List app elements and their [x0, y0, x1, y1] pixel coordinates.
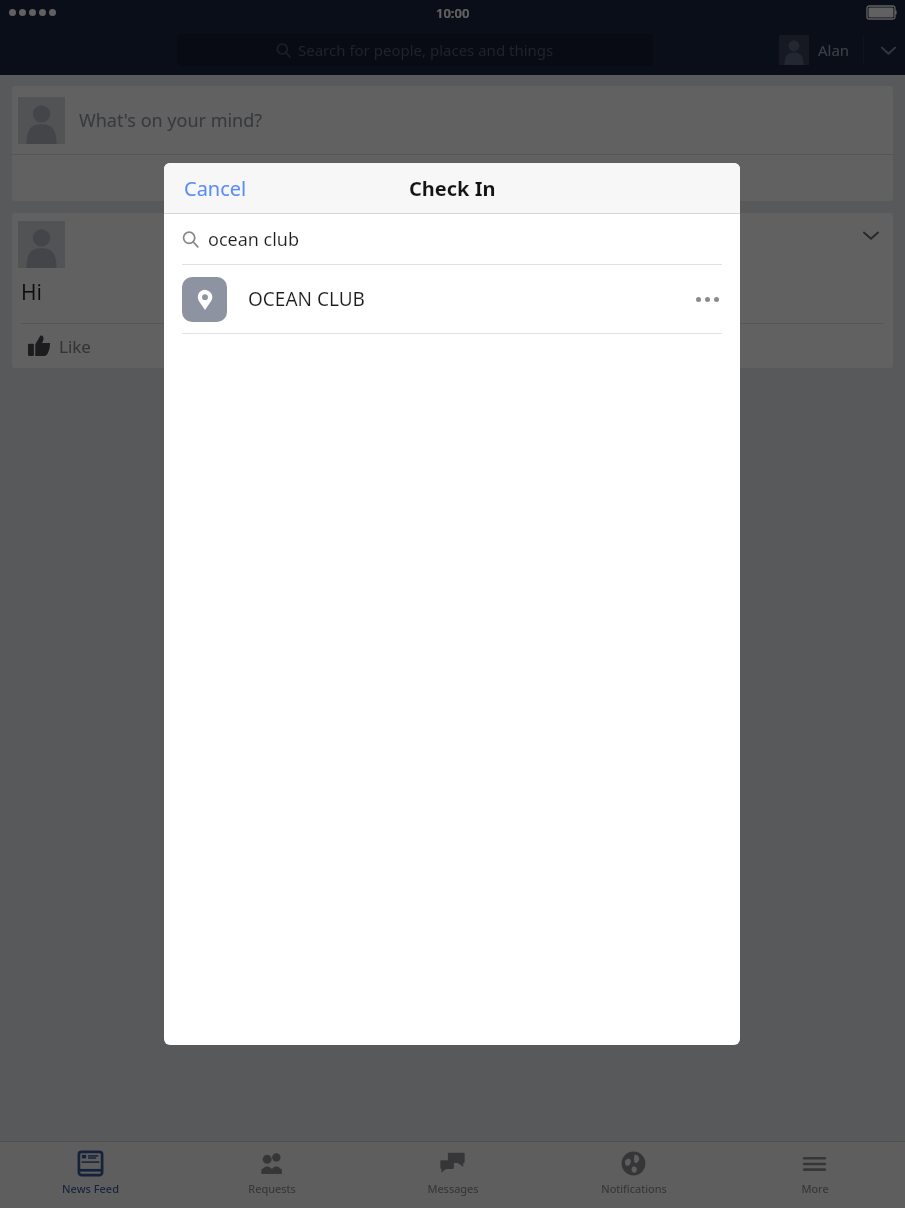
- staticText: Search for people, places and things: [298, 40, 554, 60]
- staticText: Check In: [409, 175, 496, 202]
- staticText: ocean club: [208, 227, 300, 252]
- button[interactable]: News Feed: [0, 1142, 181, 1203]
- staticText: Like: [59, 335, 91, 358]
- staticText: Notifications: [601, 1181, 667, 1196]
- staticText: Hi: [21, 278, 42, 307]
- staticText: Messages: [427, 1181, 479, 1196]
- button[interactable]: Post options: [857, 221, 885, 249]
- button[interactable]: Notifications: [543, 1142, 724, 1203]
- other: Account menu: [877, 39, 899, 61]
- staticText: Cancel: [184, 175, 247, 202]
- button[interactable]: Alan: [779, 35, 899, 65]
- button[interactable]: More options: [684, 276, 730, 322]
- button[interactable]: Requests: [181, 1142, 362, 1203]
- button[interactable]: Messages: [362, 1142, 543, 1203]
- button[interactable]: [12, 155, 893, 201]
- staticText: What's on your mind?: [79, 108, 263, 133]
- button[interactable]: Cancel: [164, 163, 267, 213]
- staticText: Requests: [248, 1181, 296, 1196]
- button[interactable]: OCEAN CLUB: [164, 265, 740, 333]
- button[interactable]: Search for people, places and things: [177, 34, 653, 66]
- staticText: OCEAN CLUB: [248, 286, 365, 312]
- staticText: 10:00: [436, 4, 470, 22]
- staticText: News Feed: [62, 1181, 119, 1196]
- staticText: Alan: [818, 40, 850, 60]
- button[interactable]: More: [724, 1142, 905, 1203]
- button[interactable]: What's on your mind?: [12, 86, 893, 154]
- staticText: More: [801, 1181, 829, 1196]
- button[interactable]: ocean club: [164, 214, 740, 264]
- button[interactable]: Like: [12, 324, 893, 368]
